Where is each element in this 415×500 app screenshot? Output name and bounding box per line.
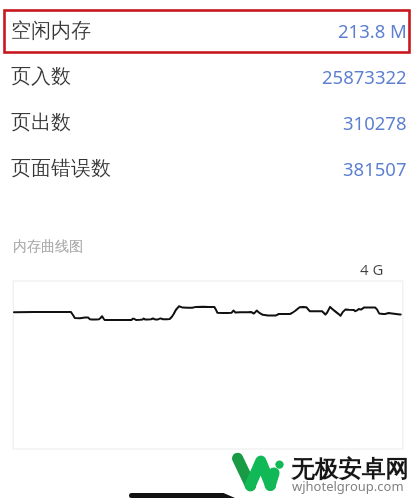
button[interactable]: 空闲内存: [0, 7, 415, 53]
staticText: 页出数: [11, 110, 71, 135]
staticText: 内存曲线图: [13, 238, 83, 256]
staticText: 25873322: [322, 64, 407, 89]
staticText: 空闲内存: [11, 18, 91, 43]
button[interactable]: 页出数: [0, 99, 415, 145]
button[interactable]: 页入数: [0, 53, 415, 99]
staticText: 页面错误数: [11, 156, 111, 181]
button[interactable]: 页面错误数: [0, 145, 415, 191]
staticText: 310278: [343, 110, 407, 135]
staticText: 4 G: [360, 259, 384, 279]
other: Home: [129, 493, 239, 498]
staticText: 页入数: [11, 64, 71, 89]
staticText: wjhotelgroup.com: [292, 477, 404, 495]
staticText: 213.8 M: [338, 18, 407, 43]
staticText: 无极安卓网: [291, 454, 409, 484]
staticText: 381507: [343, 156, 407, 181]
